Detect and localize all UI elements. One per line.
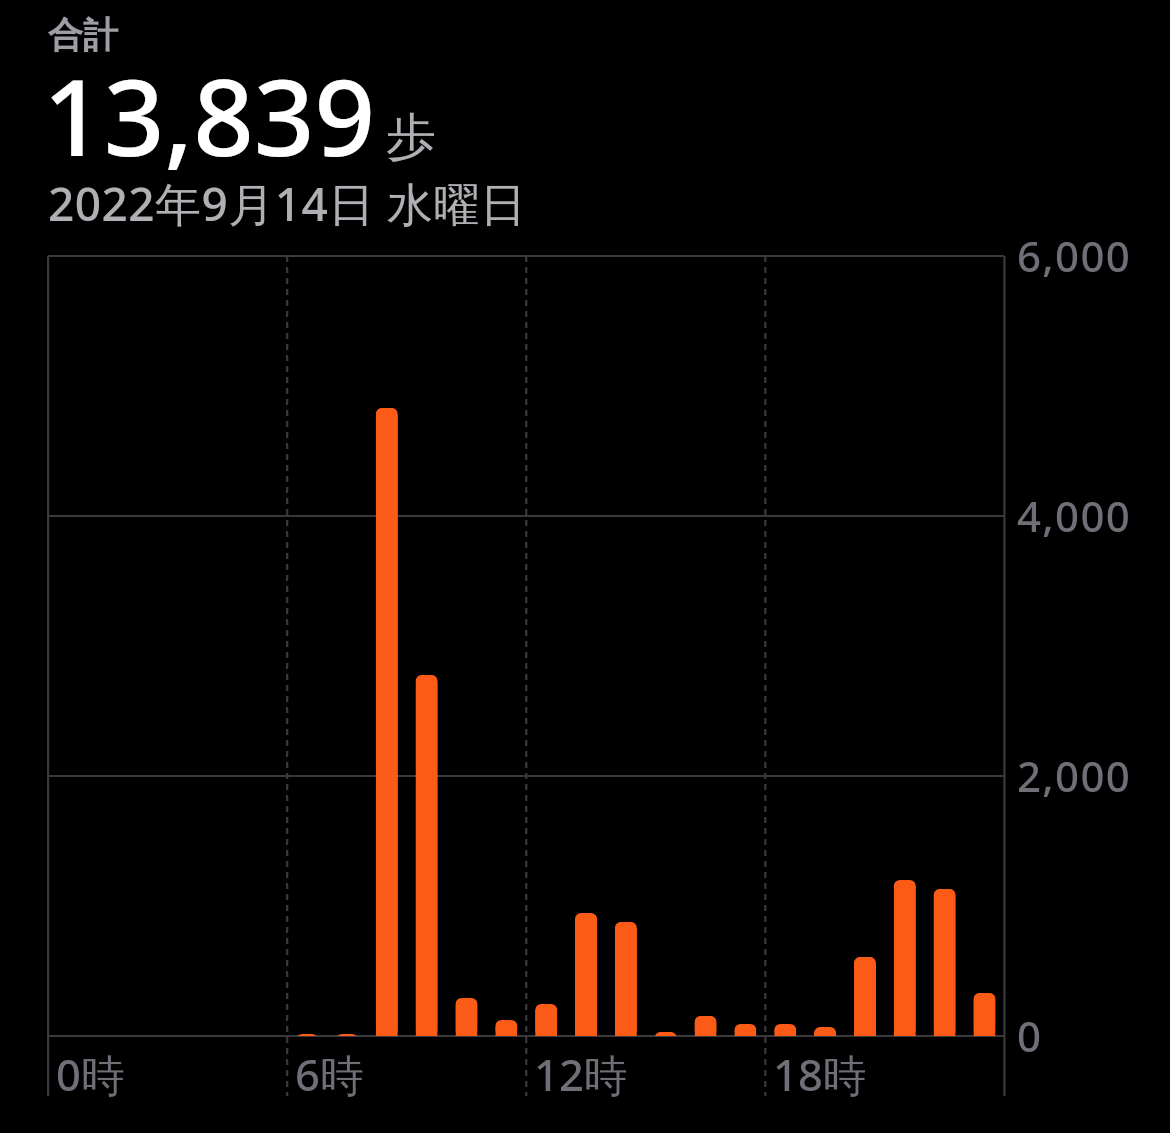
button[interactable]: 1時 0歩 [88,256,128,1036]
button[interactable]: 0時 0歩 [48,256,88,1036]
button[interactable]: 10時 292歩 [447,256,487,1036]
staticText: 合計 [48,13,118,57]
button[interactable]: 23時 331歩 [965,256,1005,1036]
staticText: 0 [1017,1007,1043,1064]
button[interactable]: 5時 0歩 [247,256,287,1036]
button[interactable]: 13時 946歩 [566,256,606,1036]
staticText: 4,000 [1017,487,1132,544]
staticText: 6,000 [1017,227,1132,284]
button[interactable]: 22時 1131歩 [925,256,965,1036]
staticText: 6時 [295,1044,364,1103]
staticText: 歩 [386,106,436,169]
button[interactable]: 14時 877歩 [606,256,646,1036]
button[interactable]: 12時 246歩 [526,256,566,1036]
button[interactable]: 17時 92歩 [725,256,765,1036]
staticText: 18時 [773,1044,867,1103]
button[interactable]: 21時 1200歩 [885,256,925,1036]
staticText: 12時 [534,1044,628,1103]
button[interactable]: 8時 4831歩 [367,256,407,1036]
button[interactable]: 6時 15歩 [287,256,327,1036]
staticText: 2,000 [1017,747,1132,804]
button[interactable]: 18時 92歩 [765,256,805,1036]
button[interactable]: 20時 608歩 [845,256,885,1036]
staticText: 13,839 [43,43,376,187]
button[interactable]: 4時 0歩 [207,256,247,1036]
button[interactable]: 11時 123歩 [486,256,526,1036]
button[interactable]: 19時 69歩 [805,256,845,1036]
button[interactable]: 9時 2777歩 [407,256,447,1036]
button[interactable]: 15時 31歩 [646,256,686,1036]
staticText: 2022年9月14日 水曜日 [48,172,527,235]
button[interactable]: 16時 154歩 [686,256,726,1036]
button[interactable]: 2時 0歩 [128,256,168,1036]
button[interactable]: 3時 0歩 [168,256,208,1036]
button[interactable]: 7時 15歩 [327,256,367,1036]
button[interactable]: 合計 13,839 歩 2022年9月14日 水曜日 [40,4,460,234]
staticText: 0時 [56,1044,125,1103]
